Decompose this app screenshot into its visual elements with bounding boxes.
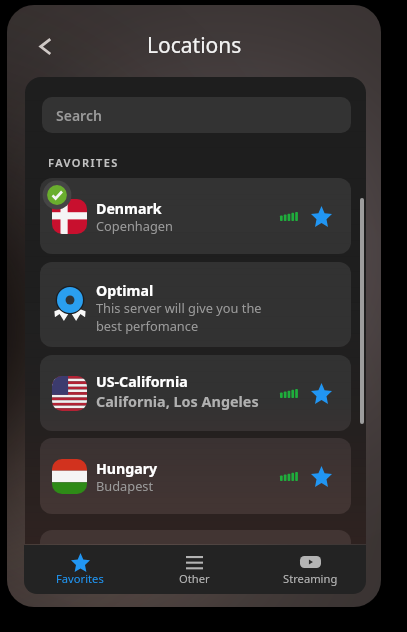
button[interactable]: Optimal xyxy=(40,262,351,347)
button[interactable]: Hungary xyxy=(40,438,351,514)
staticText: Denmark xyxy=(96,199,162,218)
staticText: Streaming xyxy=(283,571,338,586)
staticText: California, Los Angeles xyxy=(96,392,259,412)
staticText: This server will give you the best perfo… xyxy=(96,299,262,335)
staticText: Copenhagen xyxy=(96,217,173,234)
button[interactable]: Denmark xyxy=(40,178,351,254)
staticText: Optimal xyxy=(96,281,154,300)
button[interactable]: Back xyxy=(33,29,65,61)
staticText: Favorites xyxy=(56,571,104,586)
button[interactable]: US-California xyxy=(40,355,351,431)
staticText: US-California xyxy=(96,372,188,391)
staticText: Budapest xyxy=(96,477,154,494)
staticText: Hungary xyxy=(96,459,158,478)
staticText: Locations xyxy=(147,31,242,60)
button[interactable]: Other xyxy=(147,545,241,594)
button[interactable]: Search xyxy=(42,97,351,133)
button[interactable]: Favorites xyxy=(33,545,127,594)
staticText: Other xyxy=(179,571,210,586)
staticText: Search xyxy=(56,106,102,125)
button[interactable]: Streaming xyxy=(263,545,357,594)
staticText: FAVORITES xyxy=(48,155,119,170)
